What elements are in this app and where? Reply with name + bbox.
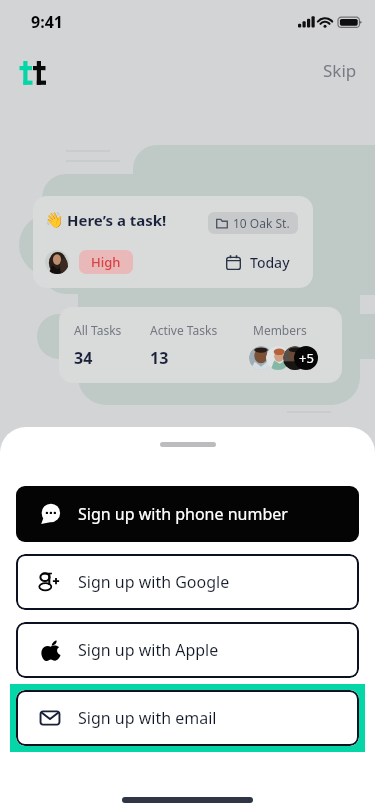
button[interactable]: Sign up with phone number <box>16 486 359 542</box>
staticText: High <box>91 253 121 271</box>
staticText: Here’s a task! <box>67 210 167 230</box>
button[interactable]: Sign up with Apple <box>16 622 359 678</box>
button[interactable]: Sign up with email <box>16 690 359 746</box>
staticText: Sign up with phone number <box>78 503 288 525</box>
staticText: 👋 <box>45 211 64 229</box>
staticText: +5 <box>299 349 314 367</box>
staticText: 9:41 <box>31 11 63 33</box>
other: tt logo <box>19 61 47 86</box>
button[interactable]: Skip <box>305 49 375 92</box>
staticText: 34 <box>74 347 93 369</box>
staticText: Members <box>253 322 307 338</box>
staticText: All Tasks <box>74 322 122 338</box>
staticText: Sign up with email <box>78 707 217 729</box>
staticText: Skip <box>323 59 357 82</box>
button[interactable]: Sign up with Google <box>16 554 359 610</box>
staticText: Sign up with Apple <box>78 639 219 661</box>
staticText: Today <box>250 253 290 272</box>
staticText: Sign up with Google <box>78 571 230 593</box>
staticText: Active Tasks <box>150 322 218 338</box>
staticText: 13 <box>150 347 169 369</box>
staticText: 10 Oak St. <box>233 215 290 231</box>
